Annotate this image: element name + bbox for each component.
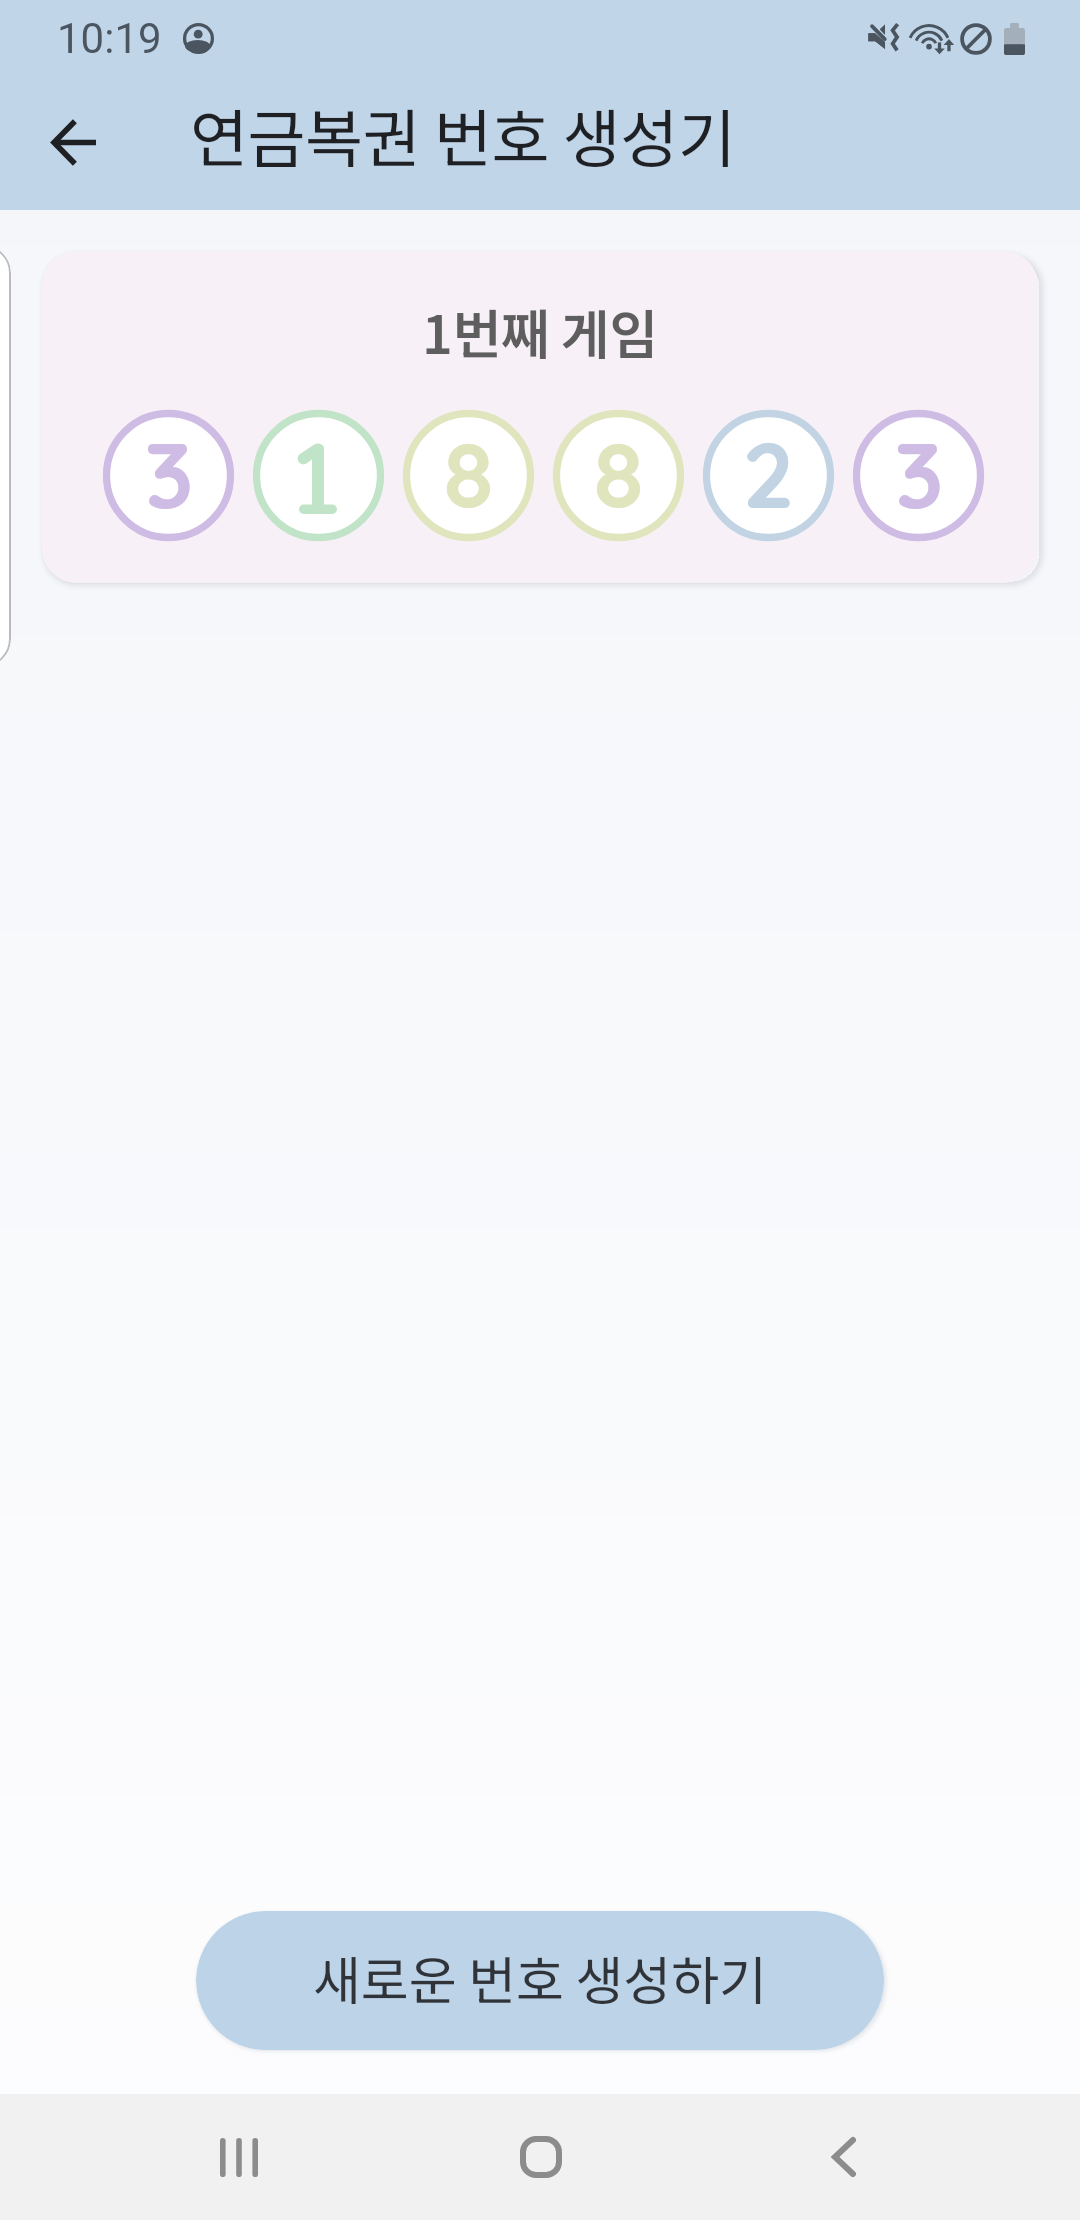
staticText: 2 [742, 416, 795, 531]
button[interactable]: 1번째 게임 [42, 251, 1038, 583]
button[interactable]: Back [20, 88, 128, 196]
button[interactable]: 새로운 번호 생성하기 [196, 1911, 884, 2050]
staticText: 8 [593, 416, 644, 531]
staticText: 1번째 게임 [422, 293, 658, 370]
staticText: 10:19 [57, 14, 162, 63]
staticText: 3 [894, 416, 944, 531]
button[interactable]: Recent apps [148, 2094, 329, 2220]
staticText: 연금복권 번호 생성기 [190, 89, 736, 180]
staticText: 새로운 번호 생성하기 [313, 1940, 767, 2015]
button[interactable]: Home [450, 2094, 631, 2220]
button[interactable]: Back [753, 2094, 934, 2220]
staticText: 8 [443, 416, 494, 531]
staticText: 1 [296, 416, 332, 531]
staticText: 3 [144, 416, 194, 531]
